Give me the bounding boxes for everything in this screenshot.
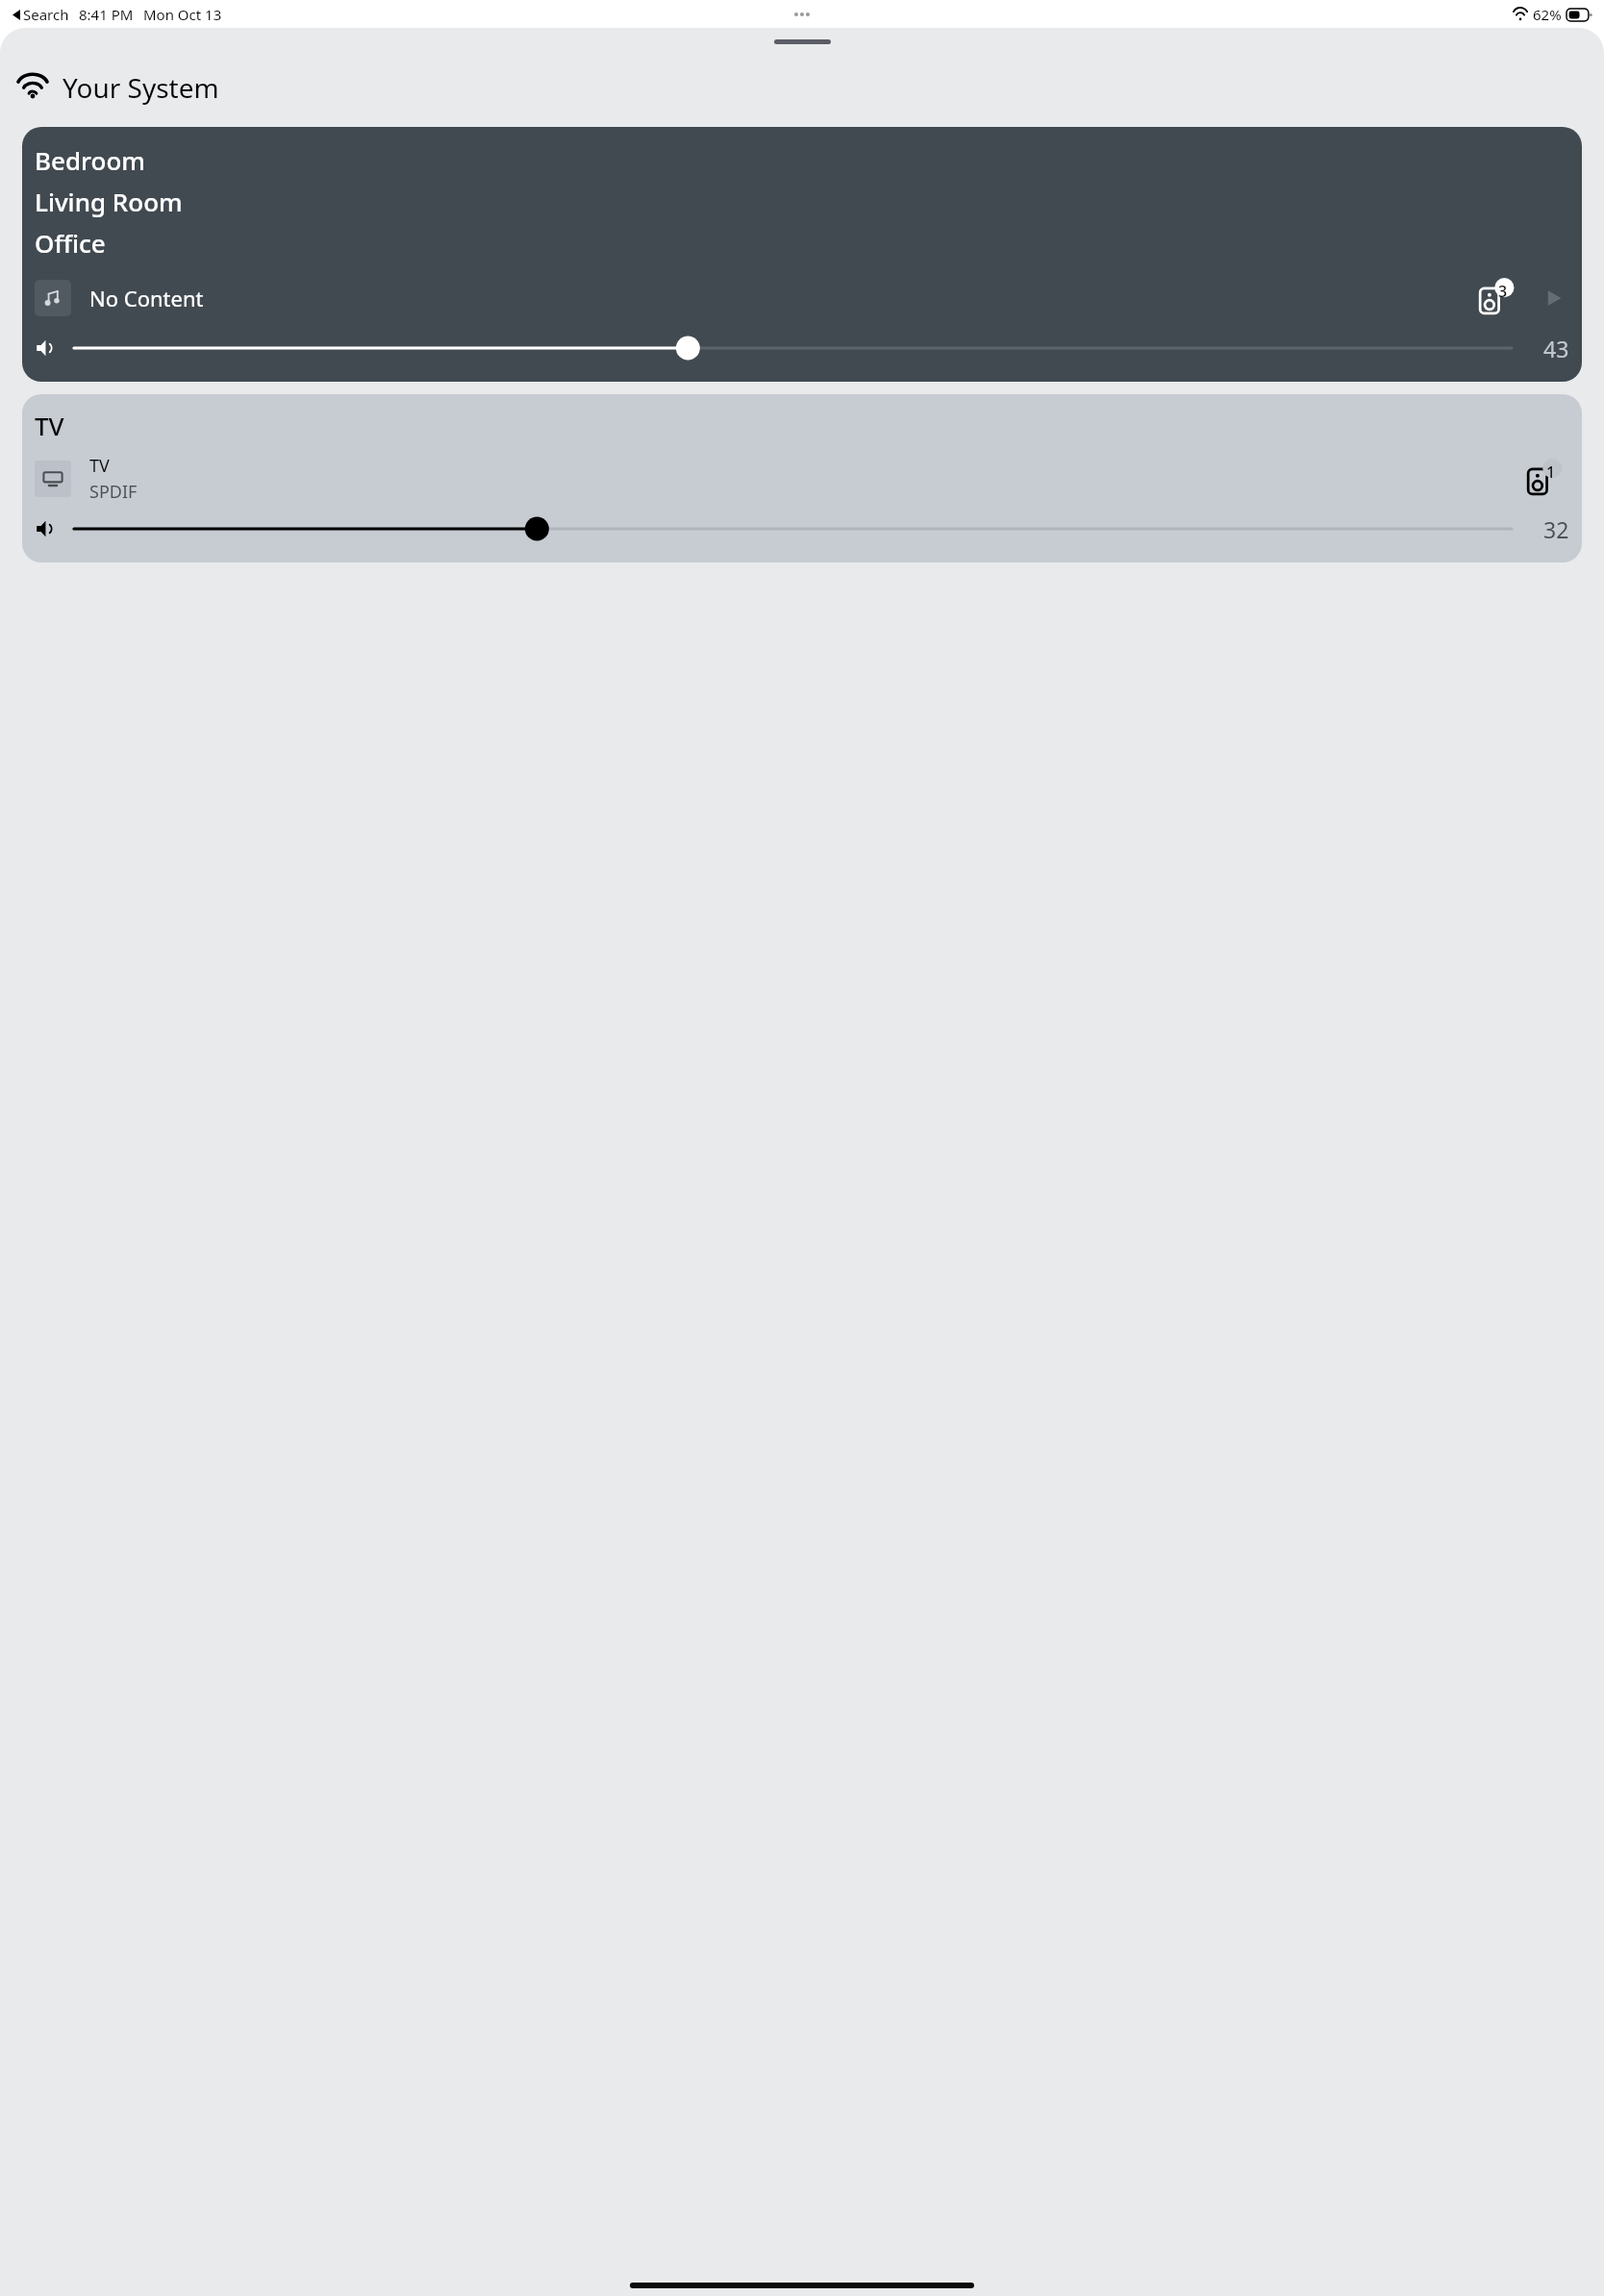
staticText: Mon Oct 13	[143, 5, 222, 24]
staticText: Search	[23, 5, 69, 24]
button[interactable]: No Content	[35, 273, 1569, 323]
staticText: No Content	[89, 284, 204, 312]
staticText: 3	[1498, 281, 1508, 302]
staticText: 8:41 PM	[79, 5, 134, 24]
staticText: 1	[1546, 462, 1556, 483]
staticText: SPDIF	[89, 480, 138, 504]
staticText: TV	[89, 454, 110, 478]
button[interactable]: Bedroom	[22, 127, 1582, 382]
staticText: Office	[35, 226, 106, 260]
staticText: 43	[1543, 334, 1569, 363]
staticText: Your System	[63, 69, 219, 106]
staticText: TV	[35, 409, 64, 442]
staticText: 32	[1543, 514, 1569, 544]
staticText: Living Room	[35, 185, 183, 218]
button[interactable]: TV	[22, 394, 1582, 562]
button[interactable]: Your System	[17, 69, 1604, 106]
button[interactable]: TV	[35, 454, 1569, 504]
staticText: Bedroom	[35, 143, 145, 177]
staticText: 62%	[1533, 5, 1562, 24]
button[interactable]: Speakers, 3 grouped	[1477, 280, 1514, 316]
button[interactable]: Play	[1539, 283, 1569, 313]
button[interactable]: Speaker, 1 device	[1525, 461, 1562, 497]
button[interactable]: 43	[35, 327, 1569, 369]
button[interactable]: 32	[35, 508, 1569, 550]
